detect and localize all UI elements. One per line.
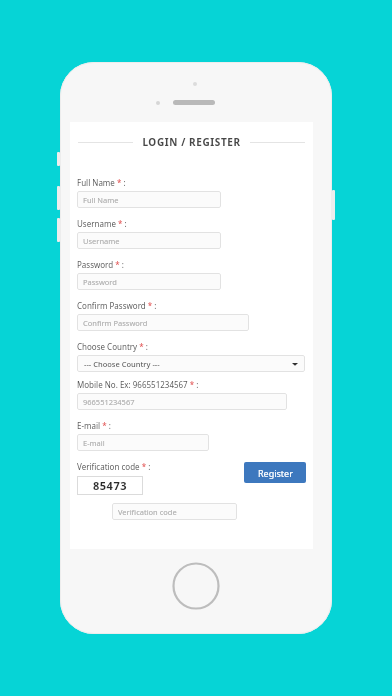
button[interactable]: Register bbox=[244, 462, 306, 483]
staticText: E-mail * : bbox=[77, 420, 111, 431]
staticText: Verification code bbox=[118, 507, 177, 517]
staticText: Password bbox=[83, 277, 117, 287]
staticText: E-mail bbox=[83, 438, 105, 448]
staticText: 966551234567 bbox=[83, 397, 135, 407]
staticText: Full Name bbox=[83, 195, 119, 205]
button[interactable]: Verification code bbox=[112, 503, 237, 520]
button[interactable]: Password bbox=[77, 273, 221, 290]
staticText: Confirm Password bbox=[83, 318, 148, 328]
staticText: Password * : bbox=[77, 259, 124, 270]
staticText: LOGIN / REGISTER bbox=[142, 135, 241, 149]
staticText: Username bbox=[83, 236, 120, 246]
button[interactable]: Username bbox=[77, 232, 221, 249]
button[interactable]: Full Name bbox=[77, 191, 221, 208]
button[interactable]: E-mail bbox=[77, 434, 209, 451]
staticText: Username * : bbox=[77, 218, 127, 229]
staticText: Verification code * : bbox=[77, 461, 151, 472]
button[interactable]: Confirm Password bbox=[77, 314, 249, 331]
button[interactable]: 966551234567 bbox=[77, 393, 287, 410]
staticText: 85473 bbox=[93, 478, 127, 493]
staticText: --- Choose Country --- bbox=[84, 359, 160, 369]
staticText: Register bbox=[258, 467, 293, 479]
staticText: Confirm Password * : bbox=[77, 300, 157, 311]
button[interactable]: --- Choose Country --- bbox=[77, 355, 305, 372]
staticText: Choose Country * : bbox=[77, 341, 148, 352]
staticText: Full Name * : bbox=[77, 177, 126, 188]
staticText: Mobile No. Ex: 966551234567 * : bbox=[77, 379, 199, 390]
